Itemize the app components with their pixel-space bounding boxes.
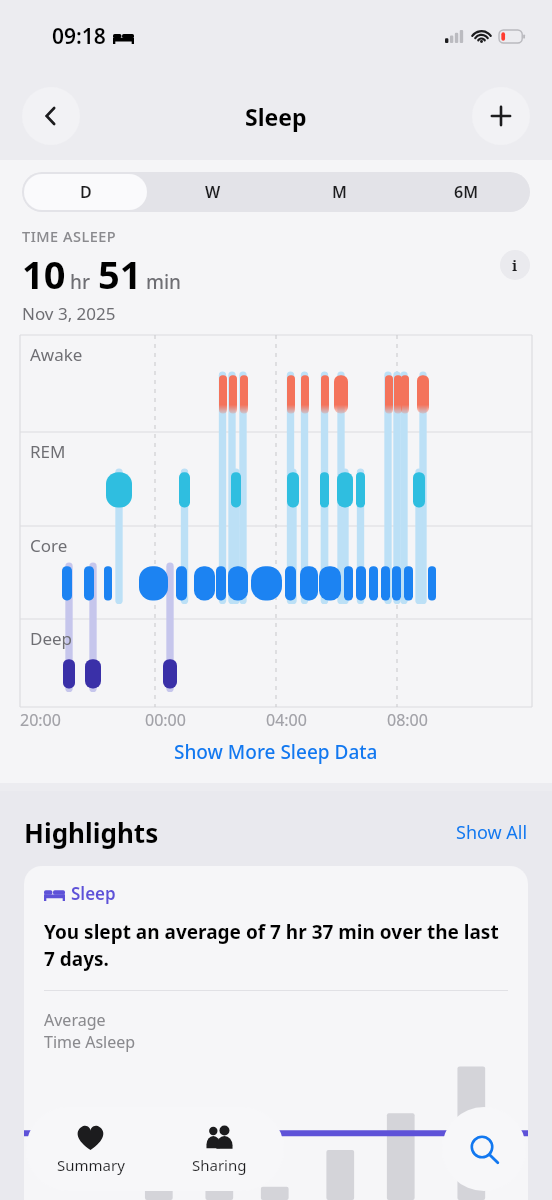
- button[interactable]: Show More Sleep Data: [0, 727, 552, 777]
- button[interactable]: Sharing: [155, 1107, 284, 1191]
- staticText: W: [205, 181, 221, 203]
- staticText: REM: [30, 440, 66, 463]
- button[interactable]: D: [24, 174, 147, 210]
- staticText: Average: [44, 1009, 106, 1031]
- staticText: 09:18: [52, 22, 106, 51]
- staticText: TIME ASLEEP: [22, 226, 117, 246]
- staticText: Sharing: [192, 1155, 247, 1175]
- button[interactable]: Summary: [26, 1107, 155, 1191]
- staticText: Sleep: [71, 882, 116, 905]
- staticText: Time Asleep: [44, 1031, 136, 1053]
- staticText: 20:00: [20, 709, 61, 731]
- staticText: D: [80, 181, 92, 203]
- staticText: Awake: [30, 343, 83, 366]
- staticText: Deep: [30, 627, 73, 650]
- staticText: Highlights: [24, 815, 159, 850]
- button[interactable]: Back: [22, 87, 80, 145]
- staticText: Sleep: [245, 101, 307, 132]
- staticText: 08:00: [387, 709, 428, 731]
- staticText: i: [512, 255, 518, 275]
- staticText: 6M: [454, 181, 479, 203]
- staticText: 04:00: [266, 709, 307, 731]
- staticText: 51: [98, 248, 142, 300]
- staticText: Summary: [57, 1155, 125, 1175]
- staticText: M: [332, 181, 347, 203]
- staticText: 00:00: [145, 709, 186, 731]
- button[interactable]: Info: [500, 250, 530, 280]
- button[interactable]: Sleep: [24, 866, 528, 1200]
- button[interactable]: Search: [442, 1107, 526, 1191]
- staticText: You slept an average of 7 hr 37 min over…: [44, 919, 508, 972]
- button[interactable]: 6M: [405, 174, 528, 210]
- staticText: min: [146, 269, 182, 295]
- staticText: Show All: [456, 820, 528, 845]
- staticText: 10: [22, 248, 66, 300]
- staticText: Core: [30, 534, 68, 557]
- button[interactable]: W: [151, 174, 274, 210]
- staticText: hr: [70, 269, 90, 295]
- staticText: Nov 3, 2025: [22, 302, 116, 325]
- button[interactable]: Show All: [456, 820, 528, 845]
- button[interactable]: Add data: [472, 87, 530, 145]
- staticText: Show More Sleep Data: [174, 739, 378, 765]
- button[interactable]: M: [278, 174, 401, 210]
